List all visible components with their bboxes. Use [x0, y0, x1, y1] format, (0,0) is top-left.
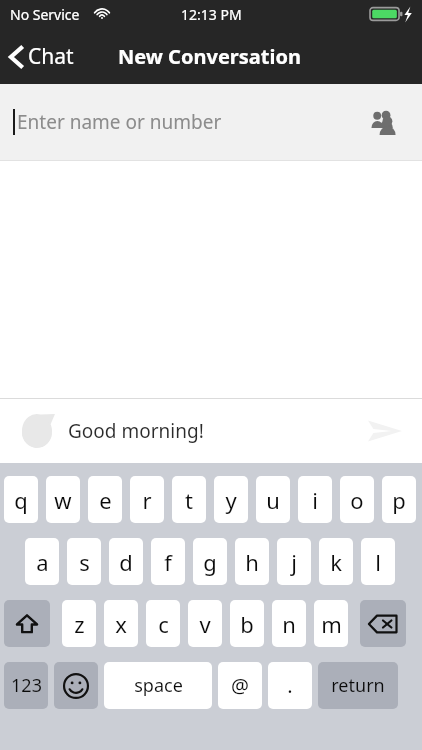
staticText: Chat: [28, 42, 74, 71]
button[interactable]: h: [235, 538, 269, 585]
button[interactable]: Shift: [4, 600, 50, 647]
button[interactable]: c: [146, 600, 180, 647]
button[interactable]: Send: [362, 408, 408, 454]
button[interactable]: a: [25, 538, 59, 585]
staticText: s: [79, 547, 90, 577]
button[interactable]: i: [298, 476, 332, 523]
staticText: .: [287, 672, 293, 699]
button[interactable]: o: [340, 476, 374, 523]
staticText: j: [291, 547, 297, 577]
staticText: o: [350, 485, 364, 515]
staticText: g: [203, 547, 217, 577]
button[interactable]: j: [277, 538, 311, 585]
staticText: p: [392, 485, 406, 515]
staticText: Enter name or number: [17, 109, 222, 135]
button[interactable]: Emoji: [54, 662, 98, 709]
button[interactable]: q: [4, 476, 38, 523]
staticText: f: [164, 547, 172, 577]
button[interactable]: d: [109, 538, 143, 585]
staticText: Good morning!: [68, 418, 204, 444]
button[interactable]: r: [130, 476, 164, 523]
button[interactable]: Chat: [0, 36, 82, 77]
button[interactable]: return: [318, 662, 398, 709]
button[interactable]: b: [230, 600, 264, 647]
staticText: x: [115, 609, 127, 639]
button[interactable]: p: [382, 476, 416, 523]
staticText: d: [119, 547, 133, 577]
staticText: @: [231, 672, 249, 699]
button[interactable]: t: [172, 476, 206, 523]
button[interactable]: z: [62, 600, 96, 647]
button[interactable]: Backspace: [360, 600, 406, 647]
staticText: e: [99, 485, 112, 515]
button[interactable]: space: [104, 662, 212, 709]
staticText: space: [134, 673, 183, 698]
staticText: y: [225, 485, 237, 515]
button[interactable]: m: [314, 600, 348, 647]
button[interactable]: g: [193, 538, 227, 585]
staticText: t: [185, 485, 193, 515]
button[interactable]: k: [319, 538, 353, 585]
staticText: k: [330, 547, 342, 577]
staticText: m: [321, 609, 342, 639]
staticText: return: [331, 673, 385, 698]
staticText: b: [240, 609, 254, 639]
staticText: q: [14, 485, 28, 515]
staticText: w: [54, 485, 72, 515]
button[interactable]: Choose contact: [364, 102, 404, 142]
staticText: i: [312, 485, 318, 515]
button[interactable]: Enter name or number: [0, 84, 422, 160]
button[interactable]: w: [46, 476, 80, 523]
staticText: New Conversation: [118, 43, 301, 70]
staticText: No Service: [10, 5, 80, 24]
staticText: c: [158, 609, 169, 639]
staticText: l: [375, 547, 381, 577]
button[interactable]: @: [218, 662, 262, 709]
staticText: u: [266, 485, 280, 515]
button[interactable]: y: [214, 476, 248, 523]
button[interactable]: l: [361, 538, 395, 585]
button[interactable]: x: [104, 600, 138, 647]
staticText: 123: [11, 673, 42, 698]
button[interactable]: v: [188, 600, 222, 647]
staticText: r: [142, 485, 152, 515]
button[interactable]: s: [67, 538, 101, 585]
button[interactable]: 123: [4, 662, 48, 709]
staticText: h: [245, 547, 259, 577]
staticText: n: [282, 609, 296, 639]
staticText: v: [199, 609, 211, 639]
button[interactable]: e: [88, 476, 122, 523]
staticText: a: [36, 547, 49, 577]
staticText: z: [74, 609, 85, 639]
button[interactable]: n: [272, 600, 306, 647]
button[interactable]: .: [268, 662, 312, 709]
button[interactable]: u: [256, 476, 290, 523]
button[interactable]: f: [151, 538, 185, 585]
staticText: 12:13 PM: [181, 5, 242, 24]
